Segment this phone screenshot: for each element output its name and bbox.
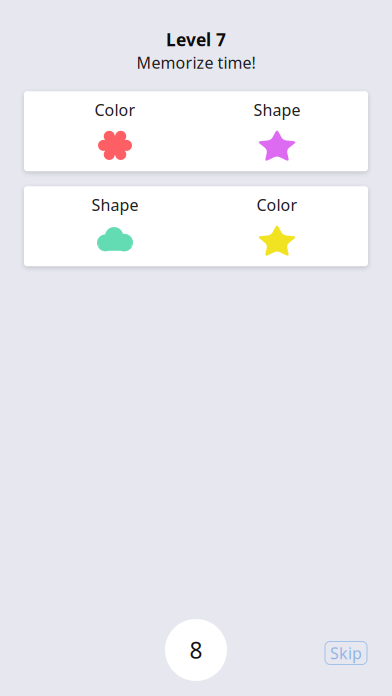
staticText: 8 [189,635,202,665]
staticText: Shape [91,194,138,215]
staticText: Color [94,99,135,120]
button[interactable]: Skip [325,641,367,664]
staticText: Memorize time! [136,52,255,73]
staticText: Color [256,194,297,215]
staticText: Skip [330,642,362,664]
staticText: Shape [253,99,300,120]
staticText: Level 7 [166,28,226,51]
